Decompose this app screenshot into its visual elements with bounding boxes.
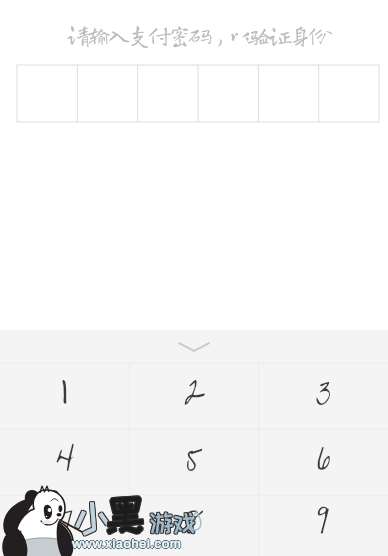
button[interactable]: 9 [259,495,388,556]
staticText: 1 [60,368,68,412]
staticText: 黑 [103,491,146,537]
staticText: 黑 [105,491,148,537]
staticText: 9 [317,498,330,535]
staticText: www.xiaohei.com [71,537,181,551]
staticText: www.xiaohei.com [73,537,183,551]
staticText: 游戏 [149,509,196,534]
staticText: 小 [72,498,111,540]
button[interactable]: 8 [130,495,259,556]
staticText: 游戏 [150,510,197,535]
staticText: 游戏 [151,509,198,534]
staticText: 黑 [104,491,147,537]
staticText: 黑 [105,492,148,538]
staticText: 小 [72,496,111,538]
staticText: 游戏 [149,510,196,535]
staticText: 小 [73,498,112,540]
staticText: 小 [73,496,112,538]
staticText: 黑 [105,493,148,539]
staticText: 黑 [103,492,146,538]
button[interactable]: 4 [0,429,130,495]
button[interactable]: 7 [0,495,130,556]
staticText: 小 [74,496,113,538]
staticText: 5 [186,435,203,472]
staticText: www.xiaohei.com [72,537,182,551]
staticText: 8 [186,498,204,535]
staticText: 黑 [104,492,147,538]
staticText: www.xiaohei.com [72,536,182,550]
button[interactable]: 6 [259,429,388,495]
staticText: 小 [73,497,112,539]
button[interactable]: 1 [0,363,130,429]
staticText: 小 [74,498,113,540]
staticText: 3 [316,369,332,406]
staticText: 小 [72,497,111,539]
button[interactable]: Payment password field [17,65,379,122]
staticText: 游戏 [150,509,197,534]
staticText: 游戏 [151,511,198,536]
button[interactable]: 5 [130,429,259,495]
staticText: 小 [74,497,113,539]
staticText: 游戏 [150,511,197,536]
staticText: 2 [184,369,206,406]
staticText: 黑 [104,493,147,539]
staticText: 游戏 [149,511,196,536]
staticText: 请输入支付密码，以验证身份 [67,23,329,47]
button[interactable]: 3 [259,363,388,429]
staticText: www.xiaohei.com [72,538,182,552]
staticText: 6 [317,435,331,472]
staticText: 游戏 [151,510,198,535]
button[interactable]: 2 [130,363,259,429]
staticText: 7 [57,498,74,535]
staticText: 黑 [103,493,146,539]
staticText: 4 [56,435,75,472]
